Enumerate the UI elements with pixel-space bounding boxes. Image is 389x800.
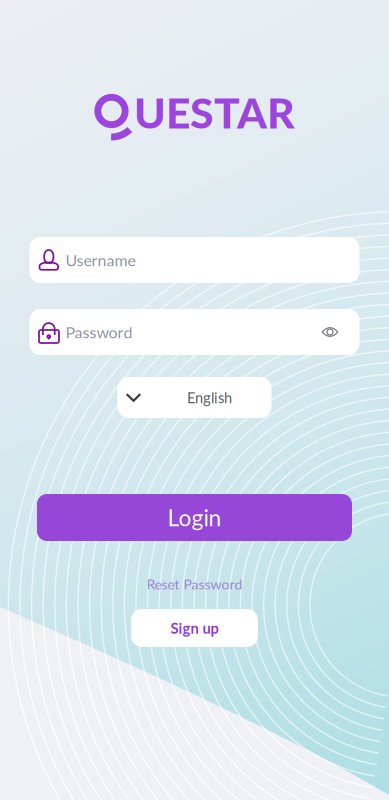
button[interactable]: Reset Password bbox=[146, 575, 242, 593]
button[interactable]: Sign up bbox=[131, 609, 258, 647]
staticText: Username bbox=[65, 250, 135, 270]
staticText: English bbox=[187, 389, 232, 406]
button[interactable]: Password bbox=[29, 309, 359, 355]
button[interactable]: Login bbox=[37, 494, 352, 541]
staticText: UESTAR bbox=[134, 86, 295, 138]
button[interactable]: Username bbox=[29, 237, 359, 283]
staticText: Login bbox=[167, 504, 221, 531]
button[interactable]: English bbox=[117, 377, 271, 418]
staticText: Reset Password bbox=[146, 576, 242, 592]
staticText: Password bbox=[65, 322, 132, 342]
staticText: Sign up bbox=[170, 619, 218, 637]
